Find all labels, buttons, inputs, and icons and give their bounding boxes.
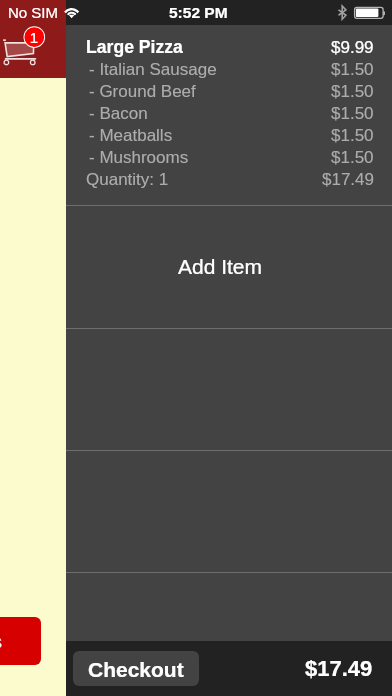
staticText: Large Pizza (86, 37, 183, 57)
staticText: $1.50 (331, 60, 374, 79)
staticText: $1.50 (331, 82, 374, 101)
staticText: $17.49 (322, 170, 374, 189)
staticText: 1 (24, 29, 44, 46)
staticText: $9.99 (331, 38, 374, 57)
staticText: Orders (0, 631, 3, 652)
staticText: No SIM (8, 4, 59, 21)
button[interactable]: Checkout (73, 651, 199, 686)
staticText: $1.50 (331, 104, 374, 123)
staticText: Checkout (88, 658, 184, 681)
button[interactable]: Large Pizza (66, 25, 392, 205)
button[interactable]: Cart (0, 24, 46, 70)
staticText: Quantity: 1 (86, 170, 169, 189)
staticText: - Mushrooms (89, 148, 189, 167)
staticText: $17.49 (305, 656, 373, 681)
staticText: - Bacon (89, 104, 148, 123)
button[interactable]: Orders (0, 617, 41, 665)
staticText: - Italian Sausage (89, 60, 217, 79)
button[interactable]: Add Item (66, 206, 392, 328)
staticText: 5:52 PM (169, 4, 228, 21)
staticText: - Meatballs (89, 126, 173, 145)
staticText: Add Item (178, 255, 263, 278)
staticText: $1.50 (331, 126, 374, 145)
staticText: - Ground Beef (89, 82, 196, 101)
staticText: $1.50 (331, 148, 374, 167)
